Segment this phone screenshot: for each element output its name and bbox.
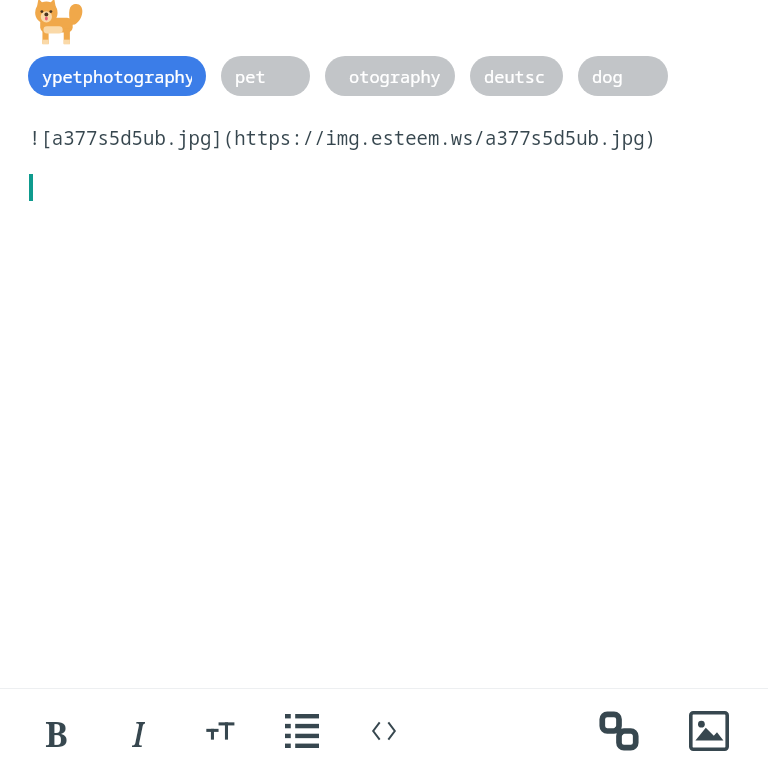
staticText: dog: [592, 65, 623, 88]
staticText: I: [132, 711, 145, 751]
button[interactable]: Bulleted list: [275, 704, 329, 758]
button[interactable]: Text size: [193, 704, 247, 758]
button[interactable]: dog: [578, 56, 668, 96]
button[interactable]: Bold: [29, 704, 83, 758]
staticText: B: [45, 711, 68, 751]
button[interactable]: Code block: [357, 704, 411, 758]
button[interactable]: Insert link: [592, 704, 646, 758]
staticText: ypetphotography: [42, 65, 192, 88]
button[interactable]: ![a377s5d5ub.jpg](https://img.esteem.ws/…: [29, 125, 739, 688]
button[interactable]: Insert image: [682, 704, 736, 758]
button[interactable]: deutsc: [470, 56, 563, 96]
staticText: ![a377s5d5ub.jpg](https://img.esteem.ws/…: [29, 125, 657, 151]
button[interactable]: pet: [221, 56, 310, 96]
staticText: pet: [235, 65, 266, 88]
staticText: deutsc: [484, 65, 546, 88]
button[interactable]: otography: [325, 56, 455, 96]
button[interactable]: Italic: [111, 704, 165, 758]
button[interactable]: ypetphotography: [28, 56, 206, 96]
staticText: otography: [349, 65, 441, 88]
